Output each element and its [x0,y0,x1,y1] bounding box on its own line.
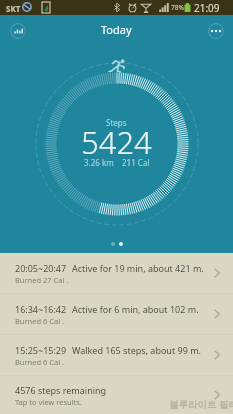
staticText: 15:25~15:29 [15,344,67,356]
staticText: Walked 165 steps, about 99 m. [72,344,201,356]
staticText: Burned 6 Cal . [15,357,65,367]
button[interactable]: 16:34~16:42 [0,294,233,334]
button[interactable]: 4576 steps remaining [0,376,233,414]
staticText: 78% [171,3,184,12]
staticText: Burned 6 Cal . [15,316,65,326]
staticText: SKT [6,3,21,14]
button[interactable]: More options [207,22,224,39]
staticText: 16:34~16:42 [15,303,67,315]
staticText: 3.26 km 211 Cal [84,157,150,168]
staticText: Tap to view results. [15,397,82,407]
staticText: Active for 6 min, about 102 m. [72,303,199,315]
staticText: Burned 27 Cal . [15,275,69,285]
staticText: Today [101,22,132,37]
staticText: Active for 19 min, about 421 m. [72,262,204,274]
button[interactable]: 15:25~15:29 [0,335,233,375]
staticText: 20:05~20:47 [15,262,67,274]
staticText: 21:09 [194,1,220,15]
staticText: 4576 steps remaining [15,384,107,396]
staticText: Steps [106,117,127,128]
staticText: 블루라이트 필터 [169,398,233,411]
button[interactable]: 20:05~20:47 [0,253,233,293]
button[interactable]: Statistics [9,22,26,39]
staticText: 5424 [81,121,152,163]
